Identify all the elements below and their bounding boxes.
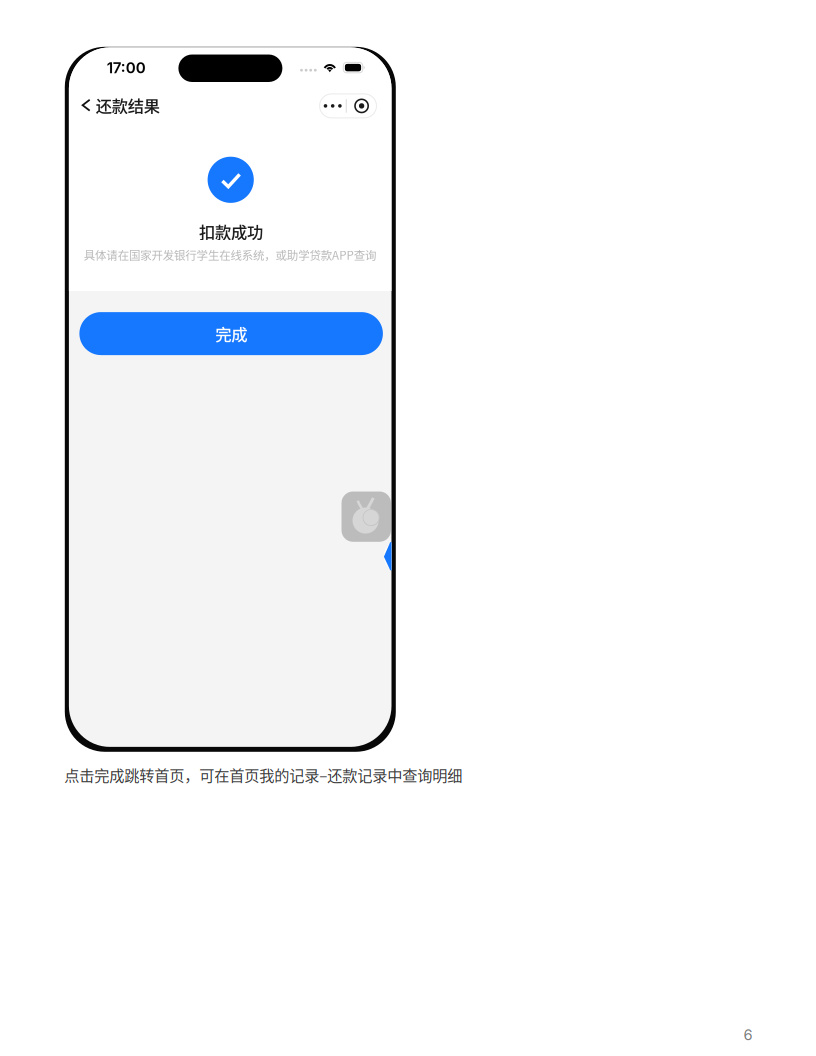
button[interactable]: More: [320, 94, 346, 118]
staticText: 扣款成功: [199, 220, 263, 243]
staticText: 还款结果: [96, 93, 160, 117]
staticText: 完成: [215, 322, 247, 345]
staticText: 17:00: [107, 59, 146, 77]
button[interactable]: Debug tools: [341, 491, 391, 542]
staticText: 6: [743, 1026, 752, 1044]
staticText: 点击完成跳转首页，可在首页我的记录–还款记录中查询明细: [64, 763, 462, 785]
button[interactable]: Close mini program: [347, 94, 376, 118]
button[interactable]: 还款结果: [81, 93, 160, 117]
staticText: 具体请在国家开发银行学生在线系统，或助学贷款APP查询: [84, 246, 376, 263]
button[interactable]: 完成: [79, 312, 383, 355]
